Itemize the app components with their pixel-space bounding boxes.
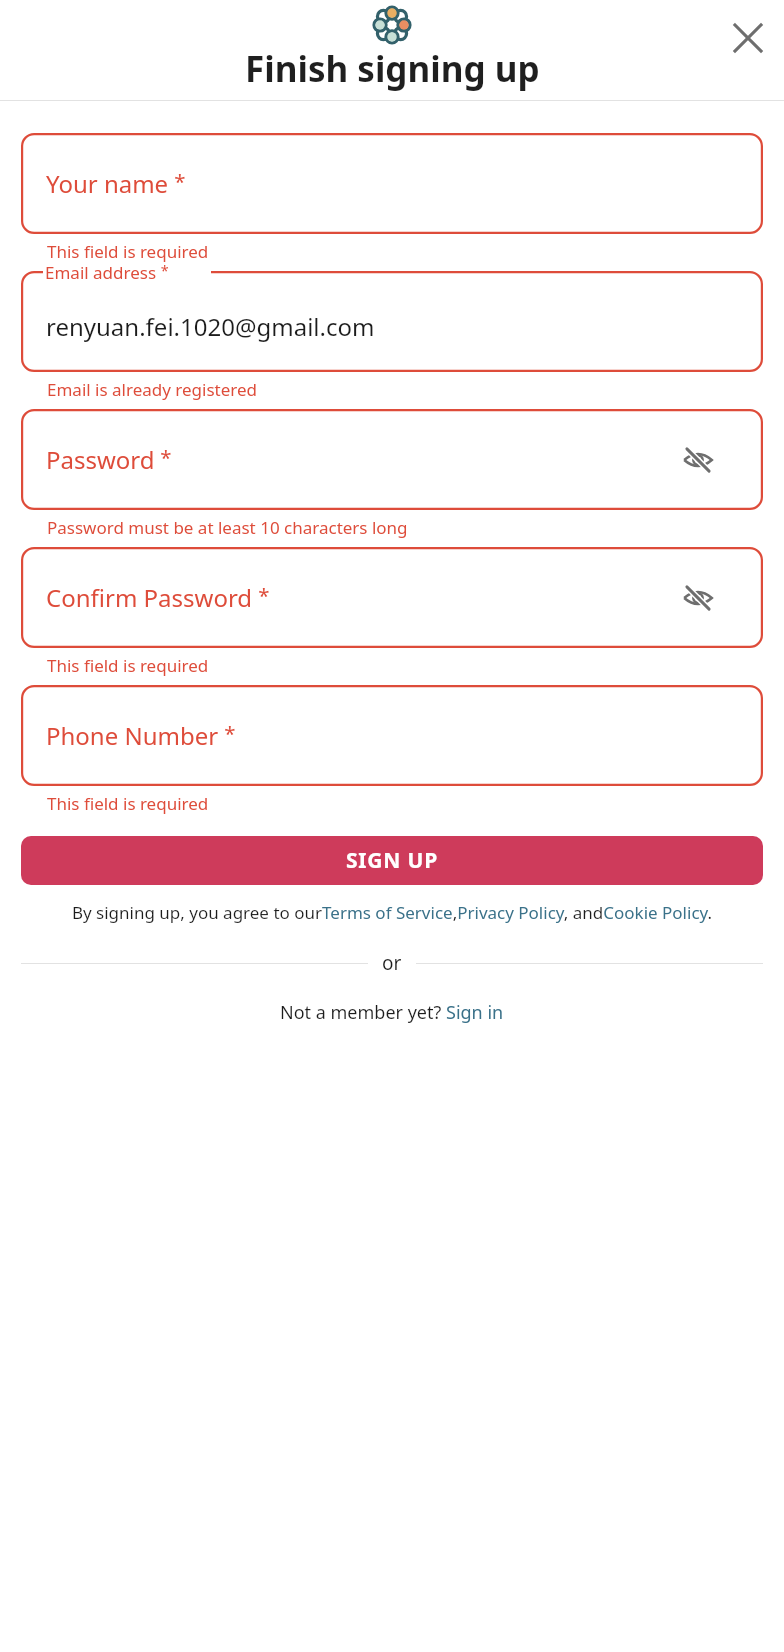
staticText: Sign in [446,1000,504,1025]
staticText: Your name [46,167,169,200]
staticText: This field is required [47,792,209,815]
button[interactable]: Your name [21,133,763,234]
staticText: This field is required [47,240,209,263]
button[interactable]: By signing up, you agree to ourTerms of … [21,901,763,924]
button[interactable]: Email address [21,271,763,372]
staticText: Password must be at least 10 characters … [47,516,408,539]
staticText: renyuan.fei.1020@gmail.com [46,310,375,343]
button[interactable]: Show password [675,437,721,483]
button[interactable]: Show password [675,575,721,621]
staticText: * [219,719,236,747]
button[interactable]: Sign in [446,1000,504,1025]
button[interactable]: Confirm Password [21,547,763,648]
staticText: SIGN UP [346,846,438,875]
staticText: This field is required [47,654,209,677]
staticText: * [253,581,270,609]
staticText: * [169,167,186,195]
staticText: or [382,950,402,976]
staticText: Confirm Password [46,581,253,614]
button[interactable]: Password [21,409,763,510]
staticText: Phone Number [46,719,219,752]
staticText: * [155,443,172,471]
staticText: * [157,261,169,281]
staticText: Email is already registered [47,378,258,401]
staticText: Email address [45,261,157,284]
button[interactable]: SIGN UP [21,836,763,885]
staticText: Finish signing up [245,45,540,93]
button[interactable]: Phone Number [21,685,763,786]
staticText: Password [46,443,155,476]
button[interactable]: Close [726,16,770,60]
staticText: Not a member yet? [280,1000,446,1025]
